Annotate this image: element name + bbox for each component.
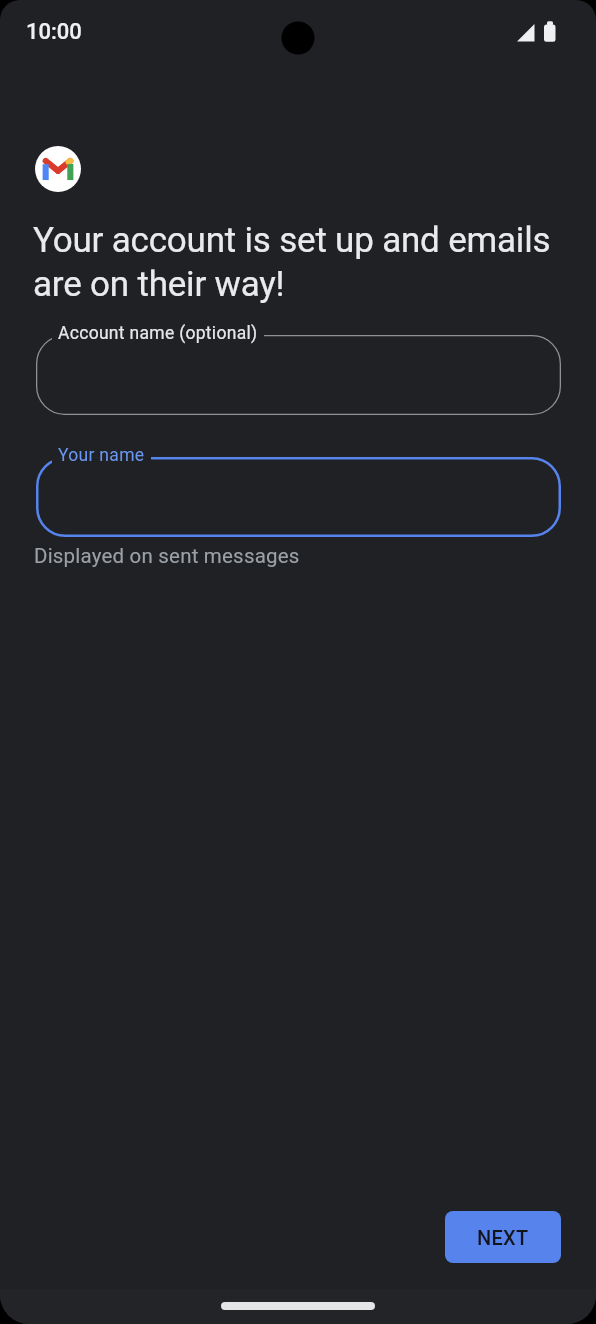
- staticText: Your account is set up and emails are on…: [33, 220, 551, 305]
- staticText: NEXT: [477, 1226, 529, 1249]
- button[interactable]: [36, 457, 561, 537]
- staticText: Account name (optional): [58, 323, 258, 344]
- button[interactable]: NEXT: [445, 1211, 561, 1263]
- staticText: Your name: [58, 445, 145, 466]
- staticText: 10:00: [26, 19, 82, 45]
- button[interactable]: [36, 335, 561, 415]
- staticText: Displayed on sent messages: [34, 544, 300, 568]
